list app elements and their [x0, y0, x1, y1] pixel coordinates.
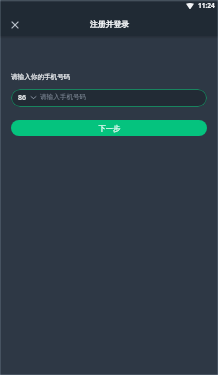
staticText: 请输入手机号码: [40, 93, 87, 101]
button[interactable]: Close: [6, 16, 24, 34]
staticText: 86: [18, 93, 27, 103]
staticText: 请输入你的手机号码: [11, 73, 71, 81]
button[interactable]: 86: [11, 89, 207, 107]
button[interactable]: 下一步: [11, 120, 207, 136]
staticText: 注册并登录: [90, 19, 129, 29]
staticText: 下一步: [98, 124, 121, 133]
staticText: 11:24: [198, 1, 215, 10]
